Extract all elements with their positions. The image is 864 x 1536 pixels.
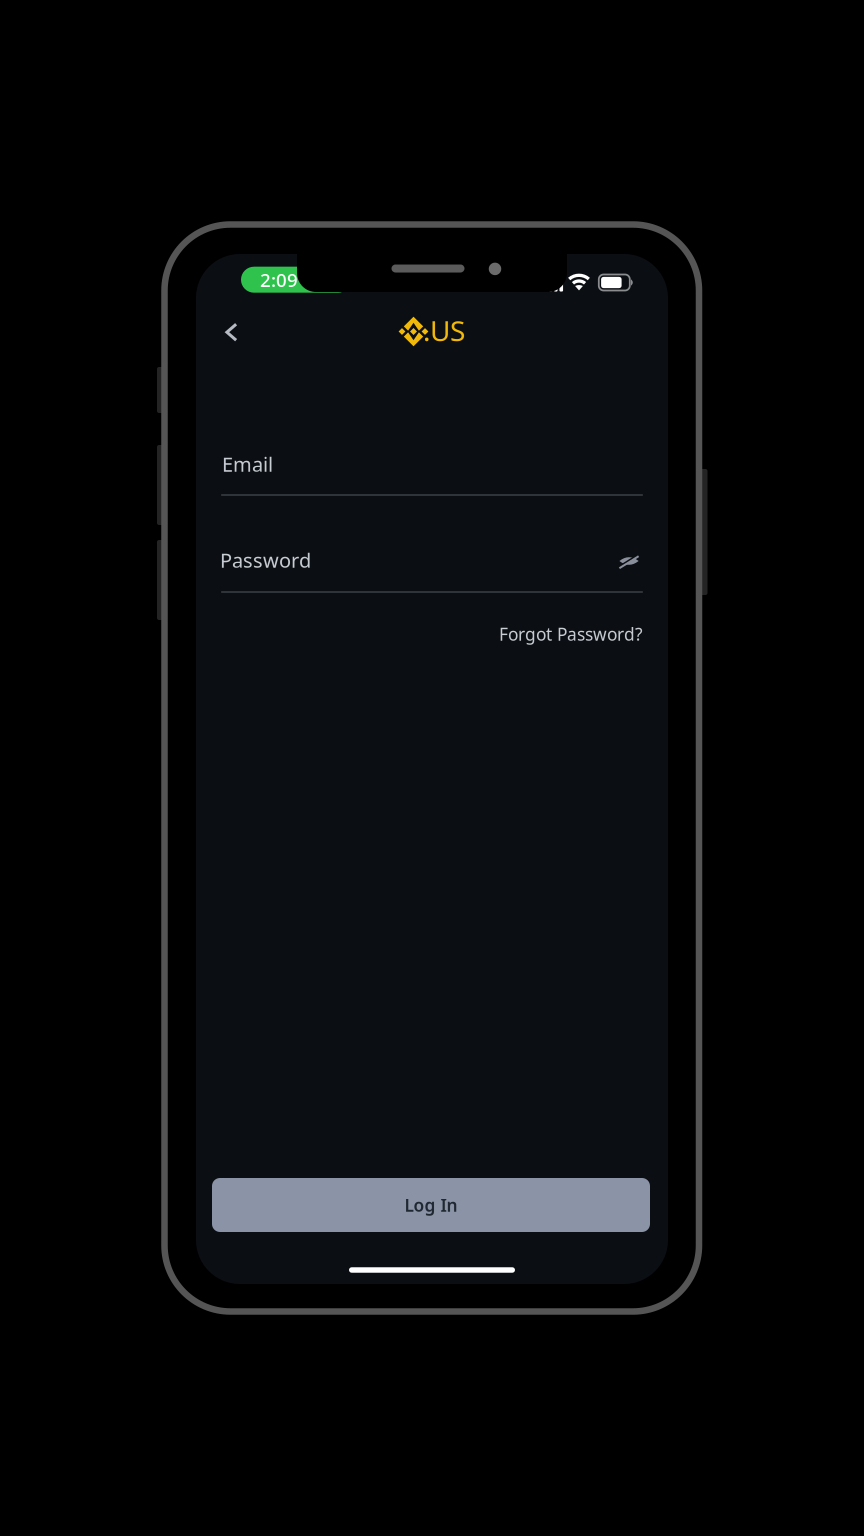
button[interactable]: Log In [212, 1178, 650, 1232]
staticText: Log In [404, 1193, 457, 1216]
staticText: Email [222, 451, 273, 477]
button[interactable]: Back [211, 312, 251, 352]
staticText: .US [423, 312, 465, 349]
staticText: 2:09 [260, 267, 298, 292]
button[interactable]: Forgot Password? [463, 617, 643, 651]
button[interactable]: Show password [609, 543, 649, 579]
staticText: Password [220, 547, 311, 573]
staticText: Forgot Password? [499, 622, 643, 645]
